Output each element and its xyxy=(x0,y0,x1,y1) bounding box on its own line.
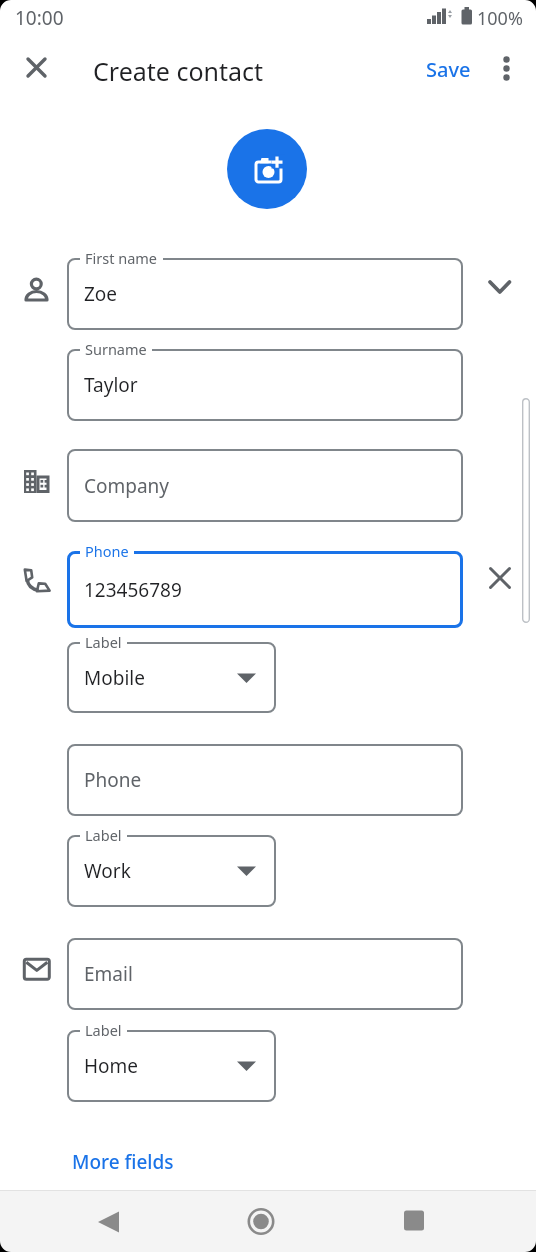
staticText: Mobile xyxy=(84,665,145,691)
staticText: Create contact xyxy=(93,54,264,84)
button[interactable]: Phone xyxy=(67,744,463,816)
staticText: First name xyxy=(85,248,158,268)
button[interactable]: Mobile xyxy=(67,642,276,713)
button[interactable]: Email xyxy=(67,938,463,1010)
staticText: Home xyxy=(84,1053,139,1079)
staticText: Label xyxy=(85,1020,122,1040)
button[interactable]: Company xyxy=(67,449,463,522)
staticText: Surname xyxy=(85,339,147,359)
button[interactable] xyxy=(22,53,52,83)
staticText: More fields xyxy=(72,1149,174,1173)
staticText: Work xyxy=(84,858,131,884)
staticText: Save xyxy=(426,56,471,83)
button[interactable] xyxy=(90,1203,128,1241)
button[interactable]: Taylor xyxy=(67,349,463,421)
staticText: 10:00 xyxy=(15,5,64,31)
button[interactable]: 123456789 xyxy=(67,551,463,628)
staticText: Label xyxy=(85,825,122,845)
staticText: 123456789 xyxy=(84,577,182,603)
staticText: Label xyxy=(85,632,122,652)
staticText: Company xyxy=(84,473,170,499)
button[interactable] xyxy=(227,129,307,209)
button[interactable]: More fields xyxy=(72,1149,192,1173)
button[interactable] xyxy=(494,53,520,85)
staticText: Phone xyxy=(85,541,129,561)
button[interactable] xyxy=(484,272,516,304)
staticText: Phone xyxy=(84,767,142,793)
staticText: Zoe xyxy=(84,281,118,307)
button[interactable]: Home xyxy=(67,1030,276,1102)
button[interactable] xyxy=(242,1203,280,1241)
button[interactable] xyxy=(396,1203,434,1241)
button[interactable]: Zoe xyxy=(67,258,463,330)
button[interactable] xyxy=(486,564,514,592)
staticText: Email xyxy=(84,961,133,987)
button[interactable]: Save xyxy=(426,55,474,83)
staticText: 100% xyxy=(477,6,523,31)
button[interactable]: Work xyxy=(67,835,276,907)
staticText: Taylor xyxy=(84,372,138,398)
